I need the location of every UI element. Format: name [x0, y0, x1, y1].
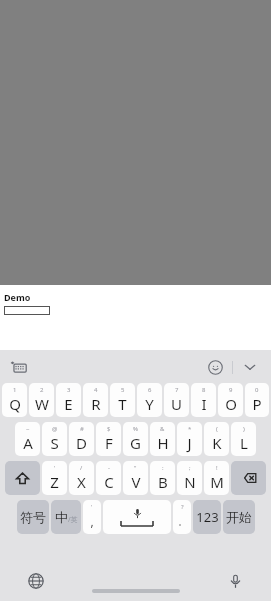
staticText: G	[130, 433, 141, 453]
staticText: O	[225, 394, 237, 414]
staticText: %	[133, 425, 138, 433]
button[interactable]: ,	[83, 500, 101, 534]
staticText: -	[108, 464, 110, 472]
button[interactable]: K	[204, 422, 229, 456]
staticText: :	[162, 464, 164, 472]
staticText: L	[240, 433, 248, 453]
button[interactable]: Shift	[5, 461, 40, 495]
staticText: 1	[13, 386, 17, 394]
staticText: A	[23, 433, 33, 453]
staticText: 5	[121, 386, 125, 394]
button[interactable]: R	[83, 383, 108, 417]
staticText: )	[243, 425, 245, 433]
button[interactable]: B	[150, 461, 175, 495]
staticText: #	[80, 425, 84, 433]
button[interactable]: C	[96, 461, 121, 495]
button[interactable]: S	[42, 422, 67, 456]
staticText: "	[134, 464, 137, 472]
staticText: !	[216, 464, 218, 472]
staticText: 0	[255, 386, 259, 394]
staticText: 8	[202, 386, 206, 394]
button[interactable]: 开始	[223, 500, 255, 534]
staticText: *	[188, 425, 192, 433]
staticText: &	[160, 425, 165, 433]
staticText: V	[131, 472, 141, 492]
button[interactable]: 。	[173, 500, 191, 534]
staticText: 。	[178, 516, 187, 527]
staticText: ?	[181, 503, 184, 511]
staticText: C	[104, 472, 114, 492]
button[interactable]: U	[164, 383, 189, 417]
button[interactable]: Switch language	[24, 569, 48, 593]
staticText: 6	[148, 386, 152, 394]
button[interactable]: Q	[2, 383, 27, 417]
staticText: I	[201, 394, 207, 414]
button[interactable]: H	[150, 422, 175, 456]
staticText: Z	[50, 472, 59, 492]
button[interactable]: Space	[103, 500, 171, 534]
button[interactable]: O	[218, 383, 243, 417]
button[interactable]: Y	[137, 383, 162, 417]
staticText: ,	[90, 513, 94, 529]
staticText: Demo	[4, 291, 31, 303]
staticText: 123	[196, 508, 219, 526]
button[interactable]: V	[123, 461, 148, 495]
button[interactable]: D	[69, 422, 94, 456]
staticText: D	[76, 433, 87, 453]
staticText: 开始	[226, 509, 252, 525]
staticText: 中	[55, 509, 68, 525]
staticText: $	[107, 425, 111, 433]
button[interactable]: E	[56, 383, 81, 417]
button[interactable]: J	[177, 422, 202, 456]
button[interactable]: Voice input	[223, 569, 247, 593]
staticText: (	[216, 425, 218, 433]
staticText: /英	[68, 515, 78, 525]
button[interactable]: Keyboard tools	[8, 356, 30, 378]
button[interactable]: Emoji	[204, 356, 226, 378]
staticText: T	[118, 394, 127, 414]
button[interactable]: Hide keyboard	[239, 356, 261, 378]
staticText: @	[52, 425, 58, 433]
staticText: '	[91, 503, 93, 511]
button[interactable]	[4, 306, 50, 315]
button[interactable]: X	[69, 461, 94, 495]
staticText: '	[54, 464, 56, 472]
staticText: 2	[40, 386, 44, 394]
staticText: J	[187, 433, 192, 453]
staticText: U	[171, 394, 182, 414]
staticText: 4	[94, 386, 98, 394]
button[interactable]: G	[123, 422, 148, 456]
button[interactable]: F	[96, 422, 121, 456]
button[interactable]: L	[231, 422, 256, 456]
staticText: ;	[189, 464, 191, 472]
staticText: E	[64, 394, 73, 414]
staticText: W	[35, 394, 49, 414]
staticText: ~	[26, 425, 30, 433]
staticText: F	[105, 433, 113, 453]
button[interactable]: 中	[51, 500, 81, 534]
button[interactable]: W	[29, 383, 54, 417]
staticText: 7	[175, 386, 179, 394]
staticText: B	[158, 472, 168, 492]
button[interactable]: P	[245, 383, 269, 417]
staticText: P	[252, 394, 262, 414]
button[interactable]: Backspace	[231, 461, 266, 495]
staticText: K	[212, 433, 222, 453]
staticText: /	[80, 464, 83, 472]
button[interactable]: Z	[42, 461, 67, 495]
staticText: Q	[9, 394, 21, 414]
staticText: X	[77, 472, 86, 492]
button[interactable]: 123	[193, 500, 221, 534]
button[interactable]: A	[15, 422, 40, 456]
staticText: 符号	[20, 509, 46, 525]
staticText: H	[157, 433, 169, 453]
staticText: S	[50, 433, 59, 453]
staticText: M	[210, 472, 224, 492]
button[interactable]: M	[204, 461, 229, 495]
staticText: 3	[67, 386, 71, 394]
button[interactable]: 符号	[17, 500, 49, 534]
button[interactable]: I	[191, 383, 216, 417]
button[interactable]: T	[110, 383, 135, 417]
staticText: 9	[229, 386, 233, 394]
button[interactable]: N	[177, 461, 202, 495]
